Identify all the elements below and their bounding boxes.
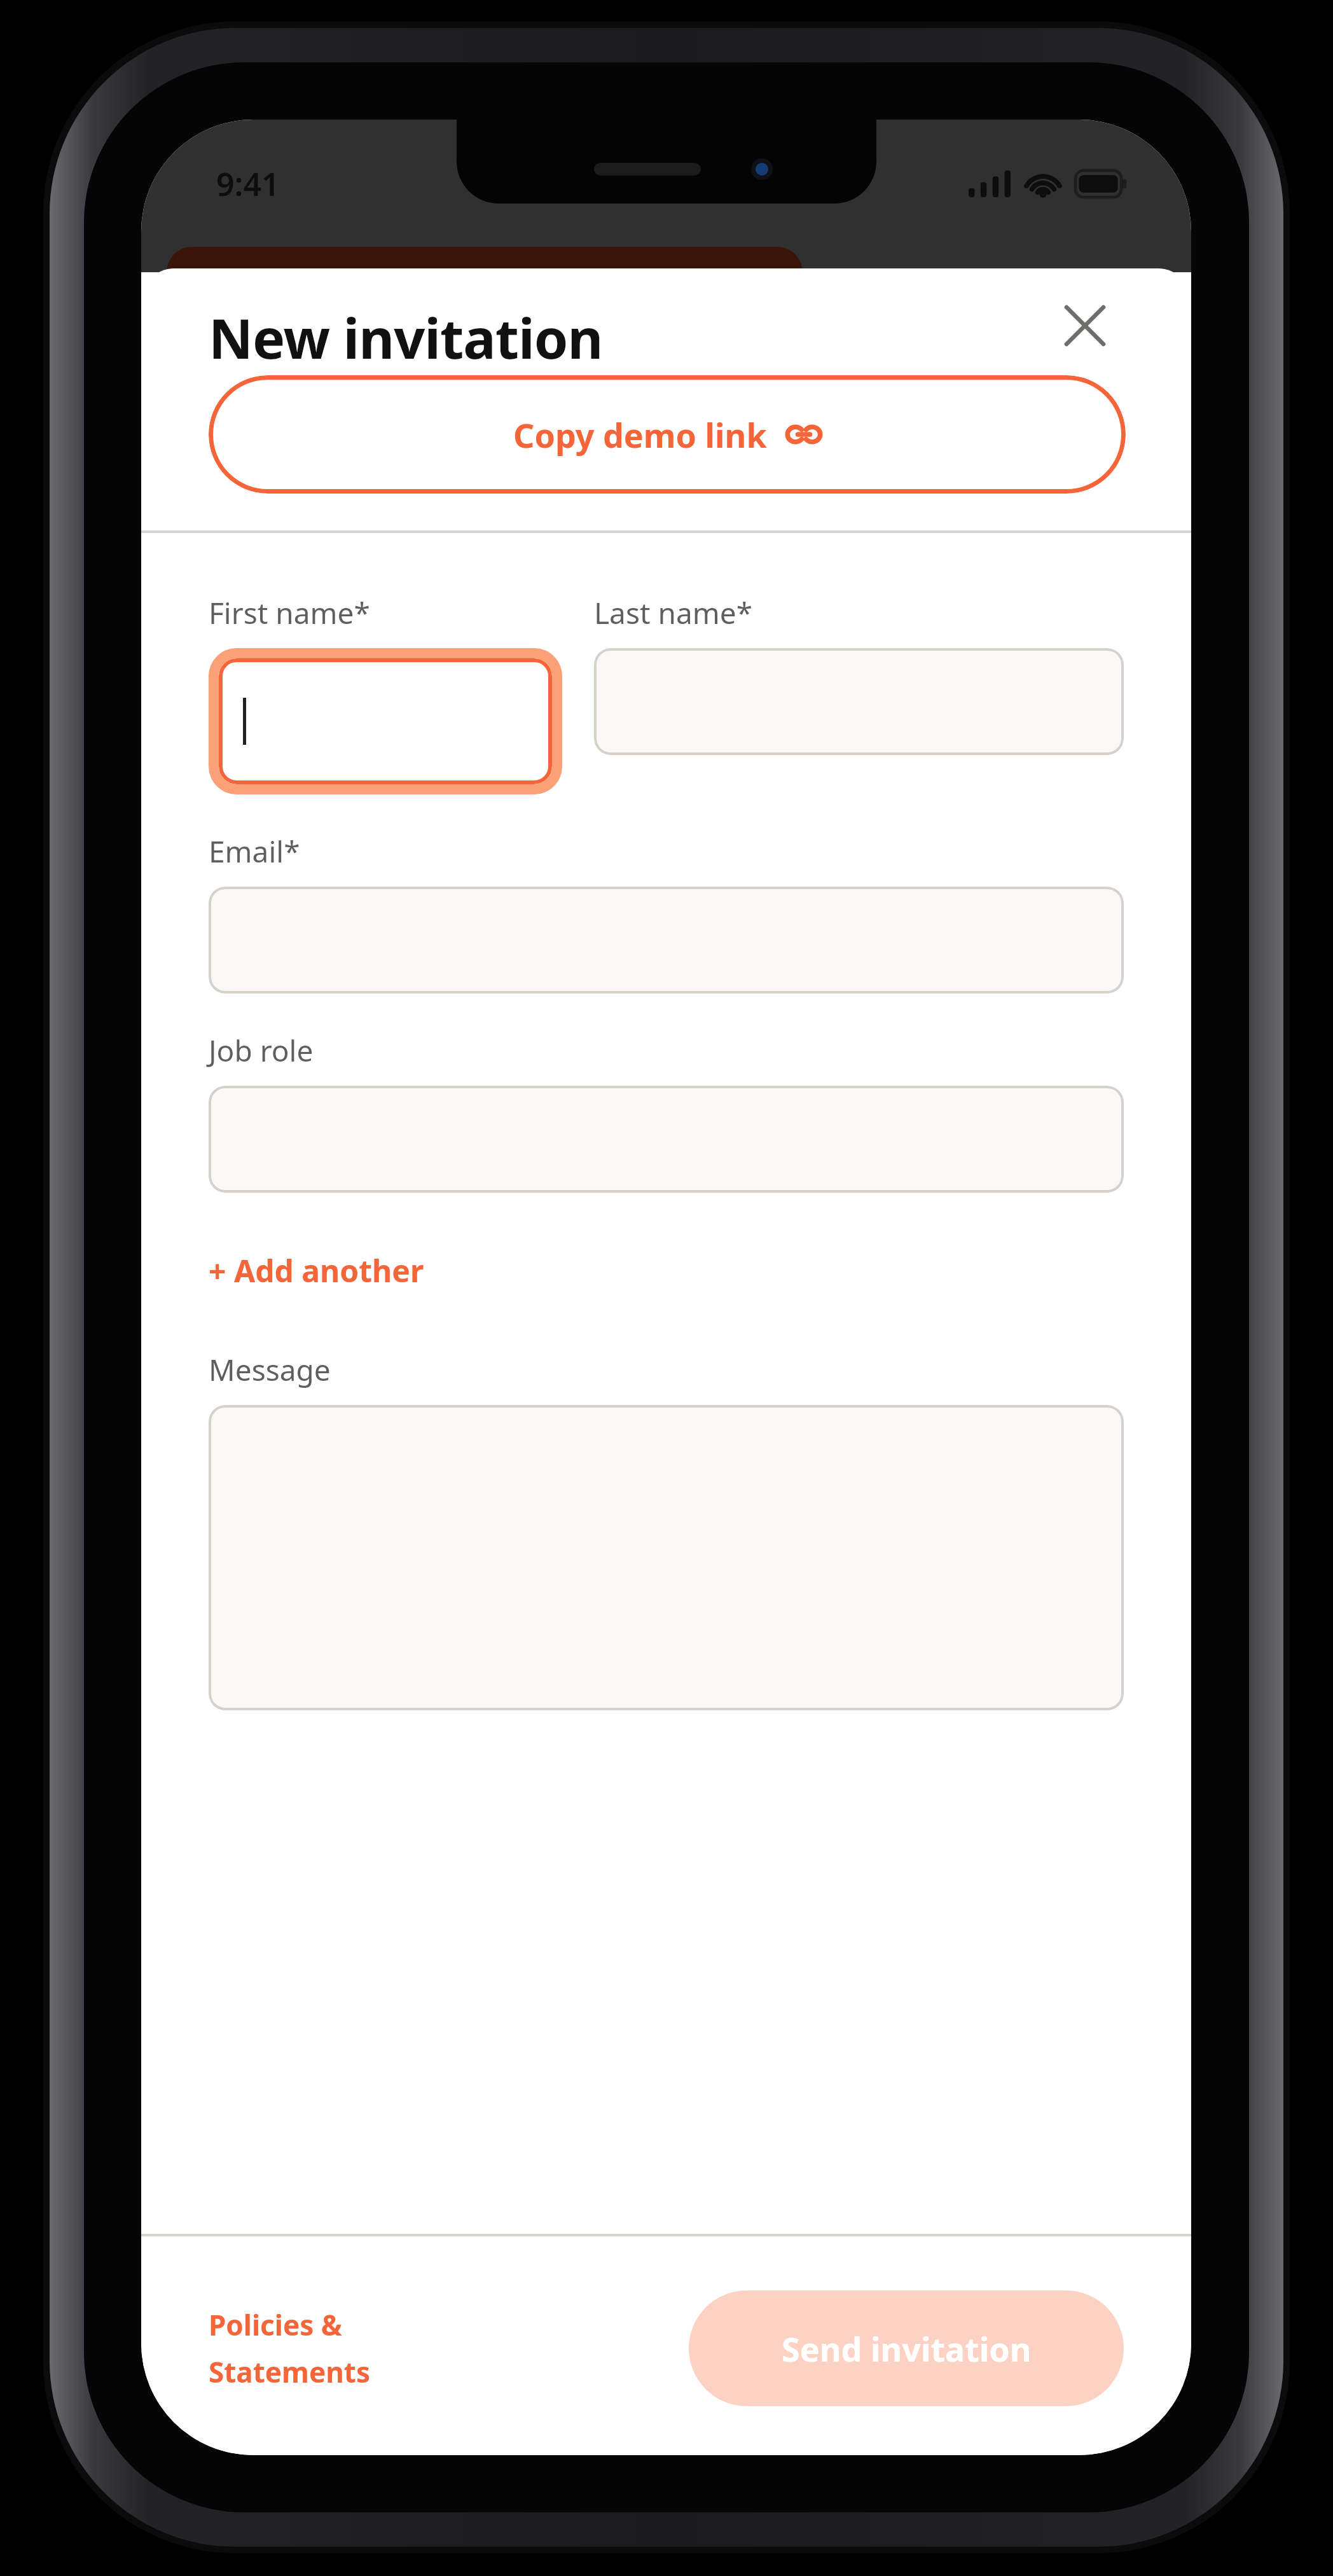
staticText: Policies & (209, 2306, 342, 2344)
staticText: Message (209, 1350, 331, 1390)
button[interactable]: Policies & (209, 2302, 371, 2395)
staticText: 9:41 (216, 162, 280, 205)
staticText: Statements (209, 2353, 371, 2391)
staticText: New invitation (209, 300, 603, 375)
staticText: First name* (209, 593, 370, 633)
staticText: Job role (209, 1030, 314, 1070)
staticText: Last name* (594, 593, 753, 633)
button[interactable] (219, 658, 552, 784)
button[interactable] (209, 887, 1124, 994)
button[interactable] (594, 648, 1124, 755)
button[interactable]: Send invitation (689, 2290, 1124, 2406)
button[interactable]: Copy demo link (209, 375, 1126, 494)
button[interactable] (209, 1405, 1124, 1710)
staticText: Copy demo link (513, 412, 767, 457)
button[interactable]: + Add another (209, 1245, 424, 1296)
button[interactable] (209, 1086, 1124, 1193)
button[interactable]: Close (1046, 286, 1124, 365)
staticText: + Add another (209, 1250, 424, 1291)
staticText: Email* (209, 831, 300, 871)
staticText: Send invitation (782, 2326, 1032, 2371)
